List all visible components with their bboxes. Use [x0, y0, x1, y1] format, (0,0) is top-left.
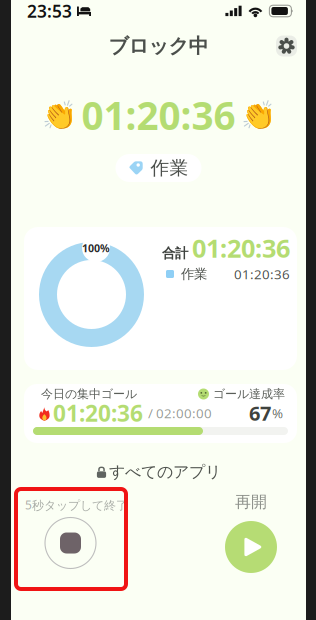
staticText: ゴール達成率: [213, 387, 285, 401]
staticText: 作業: [150, 156, 188, 179]
staticText: すべてのアプリ: [109, 462, 221, 482]
staticText: 合計: [162, 245, 188, 262]
button[interactable]: 設定: [276, 35, 297, 56]
staticText: 01:20:36: [81, 89, 235, 141]
staticText: 再開: [235, 492, 267, 512]
staticText: 01:20:36: [192, 231, 290, 265]
staticText: 01:20:36: [234, 265, 290, 283]
staticText: 👏: [41, 99, 76, 131]
staticText: %: [272, 404, 283, 422]
button[interactable]: 再開: [223, 519, 279, 575]
staticText: 👏: [240, 99, 275, 131]
staticText: 01:20:36: [53, 398, 143, 428]
staticText: 今日の集中ゴール: [41, 387, 137, 401]
button[interactable]: 終了: [42, 515, 98, 571]
staticText: ブロック中: [108, 34, 208, 58]
staticText: 23:53: [27, 0, 72, 22]
staticText: 67: [249, 400, 271, 426]
button[interactable]: 作業: [115, 154, 201, 182]
staticText: 作業: [181, 266, 207, 282]
staticText: 100%: [82, 241, 110, 255]
staticText: 5秒タップして終了: [25, 497, 128, 513]
staticText: / 02:00:00: [145, 404, 212, 422]
